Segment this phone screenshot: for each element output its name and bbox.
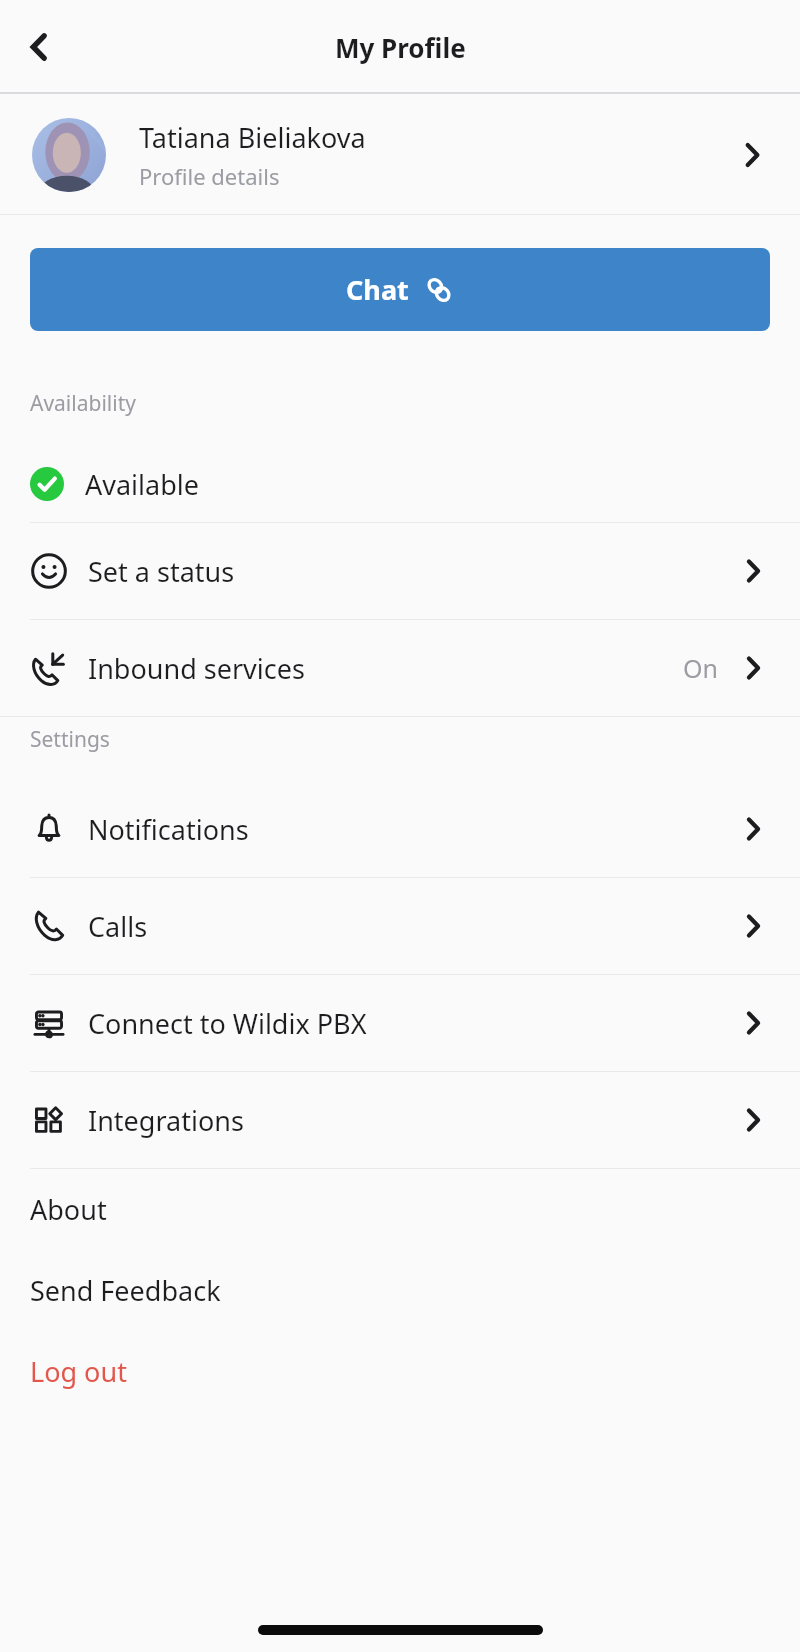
staticText: On bbox=[683, 651, 718, 685]
button[interactable]: About bbox=[0, 1169, 800, 1250]
staticText: Log out bbox=[30, 1353, 127, 1390]
staticText: My Profile bbox=[335, 30, 466, 65]
staticText: Available bbox=[85, 466, 199, 503]
button[interactable]: Notifications bbox=[0, 781, 800, 877]
button[interactable]: Tatiana Bieliakova bbox=[0, 94, 800, 215]
button[interactable]: Available bbox=[0, 446, 800, 522]
staticText: Profile details bbox=[139, 161, 280, 191]
staticText: Inbound services bbox=[88, 650, 683, 687]
button[interactable]: Send Feedback bbox=[0, 1250, 800, 1331]
staticText: Availability bbox=[30, 389, 136, 418]
button[interactable]: Calls bbox=[0, 878, 800, 974]
staticText: Notifications bbox=[88, 811, 736, 848]
staticText: Tatiana Bieliakova bbox=[139, 119, 366, 156]
button[interactable]: Integrations bbox=[0, 1072, 800, 1168]
staticText: Connect to Wildix PBX bbox=[88, 1005, 736, 1042]
button[interactable]: Inbound services bbox=[0, 620, 800, 716]
button[interactable]: Set a status bbox=[0, 523, 800, 619]
staticText: Calls bbox=[88, 908, 736, 945]
staticText: Chat bbox=[346, 271, 409, 308]
button[interactable]: Connect to Wildix PBX bbox=[0, 975, 800, 1071]
staticText: Settings bbox=[30, 725, 110, 754]
staticText: Set a status bbox=[88, 553, 736, 590]
button[interactable]: Chat bbox=[30, 248, 770, 331]
staticText: Integrations bbox=[88, 1102, 736, 1139]
staticText: About bbox=[30, 1191, 107, 1228]
button[interactable]: Back bbox=[12, 20, 66, 74]
button[interactable]: Log out bbox=[0, 1331, 800, 1412]
staticText: Send Feedback bbox=[30, 1272, 221, 1309]
